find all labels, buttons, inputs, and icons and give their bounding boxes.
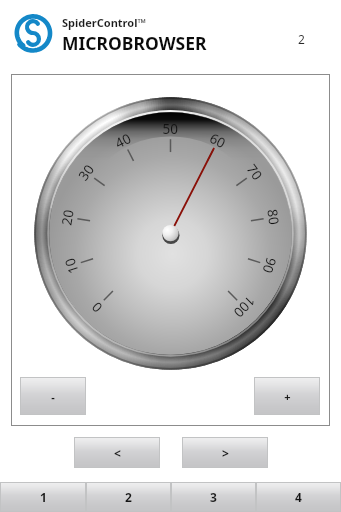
button[interactable]: 1 bbox=[0, 482, 86, 512]
staticText: < bbox=[114, 445, 121, 461]
button[interactable]: < bbox=[74, 437, 160, 468]
button[interactable]: > bbox=[182, 437, 268, 468]
staticText: 2 bbox=[125, 489, 132, 505]
staticText: 4 bbox=[295, 489, 302, 505]
staticText: + bbox=[284, 389, 291, 404]
button[interactable]: 2 bbox=[86, 482, 171, 512]
button[interactable]: - bbox=[20, 377, 86, 415]
button[interactable]: + bbox=[254, 377, 320, 415]
staticText: MICROBROWSER bbox=[62, 31, 207, 55]
staticText: SpiderControl™ bbox=[62, 15, 146, 30]
staticText: 3 bbox=[210, 489, 217, 505]
other: SpiderControl logo bbox=[13, 13, 53, 53]
staticText: - bbox=[51, 389, 55, 404]
staticText: > bbox=[222, 445, 229, 461]
staticText: 1 bbox=[40, 489, 47, 505]
button[interactable]: 3 bbox=[171, 482, 256, 512]
staticText: 2 bbox=[298, 31, 305, 47]
button[interactable]: 4 bbox=[256, 482, 341, 512]
